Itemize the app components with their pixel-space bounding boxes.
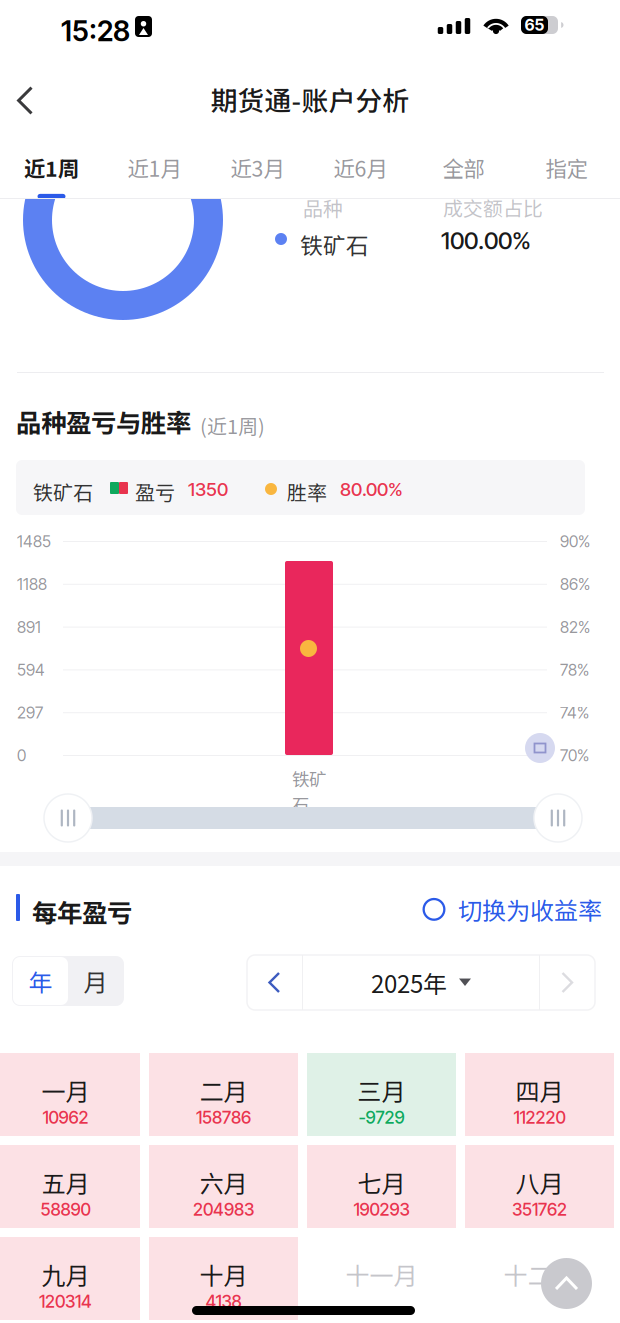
staticText: 十二月 — [503, 1257, 575, 1292]
staticText: 铁矿石 — [300, 228, 369, 261]
staticText: 65 — [524, 15, 544, 35]
button[interactable]: 2025年 — [303, 955, 539, 1010]
staticText: 82% — [560, 617, 590, 637]
button[interactable]: Adjust range — [44, 794, 92, 842]
staticText: 891 — [17, 617, 41, 637]
button[interactable]: Expand chart — [525, 733, 555, 763]
staticText: 一月 — [41, 1073, 89, 1108]
staticText: 58890 — [40, 1199, 90, 1220]
staticText: 近6月 — [333, 152, 387, 183]
staticText: 近3月 — [230, 152, 284, 183]
staticText: 70% — [560, 746, 589, 765]
staticText: 六月 — [199, 1165, 247, 1200]
staticText: 十月 — [199, 1257, 247, 1292]
staticText: 120314 — [39, 1291, 92, 1312]
staticText: 二月 — [199, 1073, 247, 1108]
button[interactable]: 近1周 — [0, 134, 103, 199]
staticText: 全部 — [442, 152, 484, 183]
staticText: 八月 — [515, 1165, 563, 1200]
staticText: 0 — [17, 746, 26, 765]
staticText: 1188 — [17, 575, 47, 594]
staticText: 近1周 — [24, 152, 79, 183]
staticText: 2025年 — [371, 965, 447, 1000]
button[interactable]: 四月 — [465, 1053, 614, 1136]
staticText: 190293 — [353, 1199, 409, 1220]
staticText: 351762 — [512, 1199, 567, 1220]
staticText: 74% — [560, 703, 589, 722]
staticText: 10962 — [42, 1107, 88, 1128]
staticText: 297 — [17, 703, 43, 722]
staticText: 15:28 — [61, 14, 130, 48]
button[interactable]: 近1月 — [103, 134, 206, 199]
staticText: 铁矿石 — [33, 477, 93, 506]
staticText: 十一月 — [345, 1257, 417, 1292]
staticText: 品种盈亏与胜率 — [16, 403, 191, 440]
staticText: 1350 — [188, 478, 228, 501]
staticText: 成交额占比 — [443, 193, 543, 222]
button[interactable]: 七月 — [307, 1145, 456, 1228]
button[interactable]: Adjust range — [534, 794, 582, 842]
staticText: 九月 — [41, 1257, 89, 1292]
staticText: 158786 — [196, 1107, 251, 1128]
staticText: 品种 — [303, 193, 343, 222]
button[interactable]: Back — [0, 62, 64, 134]
button[interactable]: 月 — [68, 957, 123, 1005]
staticText: 七月 — [357, 1165, 405, 1200]
staticText: 204983 — [193, 1199, 254, 1220]
button[interactable]: 近6月 — [309, 134, 412, 199]
staticText: 指定 — [545, 152, 587, 183]
staticText: 月 — [83, 964, 107, 998]
staticText: 4138 — [205, 1291, 241, 1312]
staticText: 五月 — [41, 1165, 89, 1200]
staticText: 盈亏 — [135, 477, 175, 506]
button[interactable]: Scroll to top — [541, 1258, 592, 1309]
staticText: (近1周) — [200, 411, 265, 440]
button[interactable]: 近3月 — [206, 134, 309, 199]
button[interactable]: Next year — [540, 955, 595, 1010]
button[interactable]: 十二月 — [465, 1237, 614, 1320]
button[interactable]: 全部 — [412, 134, 515, 199]
button[interactable]: 一月 — [0, 1053, 140, 1136]
button[interactable]: 九月 — [0, 1237, 140, 1320]
staticText: 切换为收益率 — [458, 892, 602, 927]
staticText: 112220 — [513, 1107, 565, 1128]
button[interactable]: 切换为收益率 — [421, 892, 602, 927]
button[interactable]: 五月 — [0, 1145, 140, 1228]
staticText: 每年盈亏 — [32, 893, 132, 930]
staticText: 胜率 — [287, 477, 327, 506]
button[interactable]: 指定 — [515, 134, 618, 199]
staticText: 三月 — [357, 1073, 405, 1108]
staticText: 90% — [560, 532, 590, 551]
button[interactable]: 三月 — [307, 1053, 456, 1136]
staticText: 78% — [560, 660, 589, 680]
button[interactable]: 十一月 — [307, 1237, 456, 1320]
button[interactable]: 八月 — [465, 1145, 614, 1228]
staticText: 年 — [28, 964, 52, 998]
button[interactable]: 十月 — [149, 1237, 298, 1320]
staticText: 594 — [17, 660, 45, 680]
staticText: 1485 — [17, 532, 51, 551]
staticText: 四月 — [515, 1073, 563, 1108]
button[interactable]: 六月 — [149, 1145, 298, 1228]
button[interactable]: Previous year — [247, 955, 302, 1010]
staticText: -9729 — [358, 1107, 404, 1128]
button[interactable]: 二月 — [149, 1053, 298, 1136]
staticText: 100.00% — [441, 226, 531, 255]
staticText: 80.00% — [340, 478, 403, 501]
staticText: 近1月 — [127, 152, 181, 183]
button[interactable]: 年 — [13, 957, 68, 1005]
staticText: 铁矿石 — [292, 766, 326, 816]
staticText: 86% — [560, 575, 590, 594]
staticText: 期货通-账户分析 — [210, 80, 409, 118]
